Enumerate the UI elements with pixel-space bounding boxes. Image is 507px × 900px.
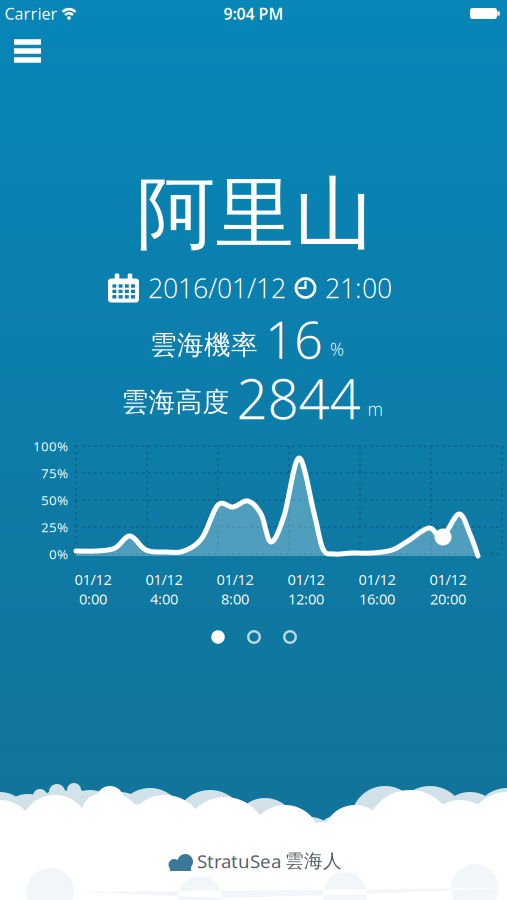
- staticText: 16: [265, 305, 323, 373]
- staticText: %: [330, 337, 344, 360]
- staticText: 雲海人: [285, 849, 342, 872]
- staticText: StratuSea: [197, 849, 281, 873]
- staticText: 01/12: [216, 569, 253, 589]
- staticText: 20:00: [430, 589, 466, 608]
- staticText: 4:00: [150, 589, 178, 608]
- button[interactable]: Page 1: [211, 630, 225, 644]
- staticText: 雲海機率: [150, 329, 258, 361]
- staticText: 2844: [236, 362, 360, 434]
- staticText: 01/12: [429, 569, 466, 589]
- staticText: 75%: [41, 464, 68, 482]
- button[interactable]: Page 2: [248, 631, 260, 643]
- button[interactable]: Page 3: [284, 631, 296, 643]
- staticText: 50%: [41, 491, 68, 509]
- button[interactable]: Menu: [14, 39, 41, 63]
- staticText: 100%: [33, 437, 68, 455]
- staticText: 9:04 PM: [223, 3, 283, 24]
- staticText: 01/12: [287, 569, 324, 589]
- staticText: 0:00: [79, 589, 107, 608]
- staticText: 8:00: [221, 589, 249, 608]
- staticText: 21:00: [325, 270, 392, 306]
- staticText: 01/12: [358, 569, 395, 589]
- staticText: 01/12: [74, 569, 111, 589]
- staticText: m: [367, 397, 382, 420]
- staticText: 01/12: [145, 569, 182, 589]
- staticText: 12:00: [288, 589, 324, 608]
- staticText: Carrier: [4, 3, 57, 24]
- staticText: 25%: [41, 518, 68, 536]
- staticText: 0%: [49, 545, 68, 563]
- staticText: 雲海高度: [121, 386, 229, 418]
- staticText: 阿里山: [136, 166, 373, 262]
- staticText: 16:00: [359, 589, 395, 608]
- staticText: 2016/01/12: [148, 270, 286, 306]
